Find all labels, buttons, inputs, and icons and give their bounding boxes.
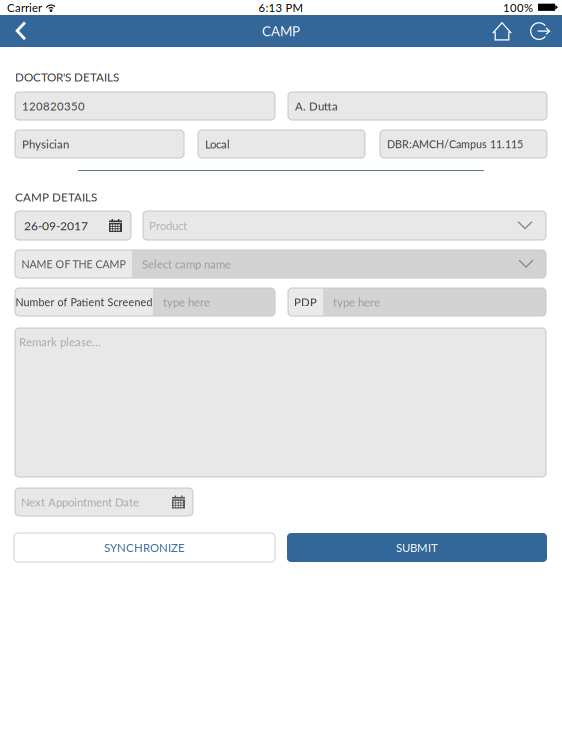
button[interactable]: Number of Patient Screened bbox=[15, 288, 275, 316]
staticText: CAMP DETAILS bbox=[15, 190, 97, 204]
staticText: CAMP bbox=[262, 23, 300, 39]
staticText: type here bbox=[163, 295, 210, 309]
button[interactable]: SUBMIT bbox=[287, 533, 547, 562]
staticText: DOCTOR'S DETAILS bbox=[15, 70, 119, 84]
staticText: DBR:AMCH/Campus 11.115 bbox=[387, 138, 523, 150]
button[interactable]: Log out bbox=[518, 15, 562, 47]
staticText: 6:13 PM bbox=[258, 1, 303, 14]
staticText: Next Appointment Date bbox=[21, 495, 139, 509]
staticText: PDP bbox=[294, 295, 317, 309]
staticText: SYNCHRONIZE bbox=[104, 541, 185, 554]
button[interactable]: NAME OF THE CAMP bbox=[15, 250, 546, 278]
staticText: 26-09-2017 bbox=[24, 218, 88, 233]
staticText: 120820350 bbox=[22, 99, 85, 113]
button[interactable]: SYNCHRONIZE bbox=[14, 533, 275, 562]
staticText: Carrier bbox=[7, 1, 42, 14]
button[interactable]: PDP bbox=[288, 288, 546, 316]
staticText: A. Dutta bbox=[295, 99, 338, 113]
staticText: Product bbox=[149, 219, 187, 232]
button[interactable]: Product bbox=[143, 211, 546, 240]
staticText: NAME OF THE CAMP bbox=[21, 258, 125, 270]
staticText: Select camp name bbox=[142, 257, 231, 271]
button[interactable]: Back bbox=[0, 15, 42, 47]
staticText: SUBMIT bbox=[396, 541, 438, 554]
staticText: Number of Patient Screened bbox=[15, 296, 152, 308]
staticText: type here bbox=[333, 295, 380, 309]
staticText: Local bbox=[205, 137, 230, 151]
staticText: Remark please... bbox=[19, 335, 101, 349]
staticText: Physician bbox=[22, 137, 69, 151]
staticText: 100% bbox=[503, 1, 533, 14]
button[interactable]: Home bbox=[486, 15, 518, 47]
